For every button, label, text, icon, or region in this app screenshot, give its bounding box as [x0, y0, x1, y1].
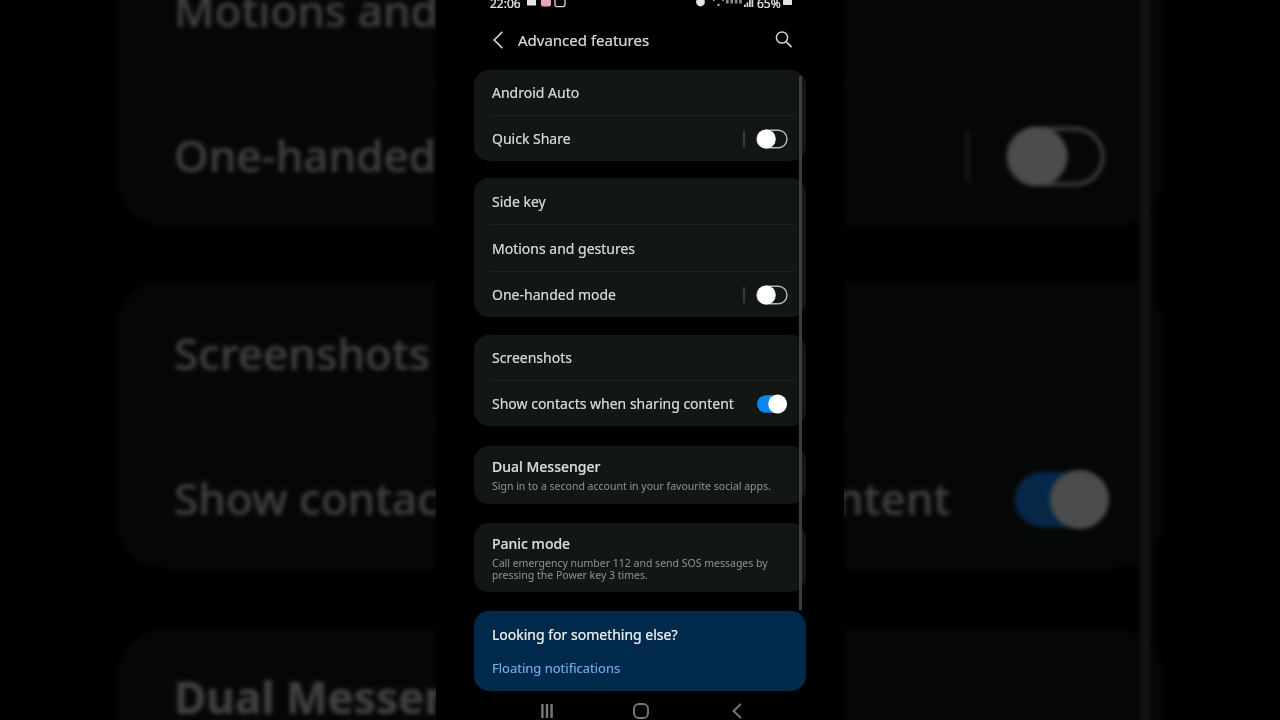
staticText: Show contacts when sharing content	[173, 467, 951, 527]
button[interactable]: Turn on	[735, 280, 787, 310]
staticText: Dual Messenger	[173, 665, 529, 720]
staticText: Motions and gestures	[175, 0, 635, 39]
button[interactable]: Android Auto	[474, 70, 806, 115]
staticText: Motions and gestures	[492, 239, 636, 258]
staticText: One-handed mode	[174, 123, 571, 183]
button[interactable]: Panic mode	[474, 523, 806, 592]
staticText: Show contacts when sharing content	[174, 467, 952, 527]
staticText: One-handed mode	[174, 125, 571, 185]
staticText: Motions and gestures	[174, 0, 634, 39]
button[interactable]: Turn on	[735, 124, 787, 154]
staticText: Dual Messenger	[174, 666, 530, 720]
staticText: Screenshots	[173, 322, 431, 382]
staticText: Show contacts when sharing content	[175, 467, 953, 527]
button[interactable]: Back	[713, 691, 759, 720]
staticText: Screenshots	[174, 322, 432, 382]
button[interactable]: Side key	[474, 178, 806, 224]
staticText: 22:06	[490, 0, 521, 9]
staticText: 65%	[757, 0, 781, 9]
staticText: One-handed mode	[492, 285, 616, 304]
staticText: Floating notifications	[492, 659, 621, 677]
staticText: Show contacts when sharing content	[492, 394, 734, 413]
button[interactable]: Screenshots	[474, 335, 806, 380]
button[interactable]: Turn off	[735, 389, 787, 419]
button[interactable]: Home	[618, 691, 664, 720]
staticText: Screenshots	[174, 321, 432, 381]
staticText: Quick Share	[492, 129, 571, 148]
staticText: Screenshots	[492, 348, 572, 367]
staticText: Show contacts when sharing content	[174, 468, 952, 528]
button[interactable]: Search	[764, 14, 844, 66]
staticText: Call emergency number 112 and send SOS m…	[492, 556, 768, 582]
staticText: Motions and gestures	[174, 0, 634, 40]
button[interactable]: Quick Share	[474, 116, 806, 161]
button[interactable]: Motions and gestures	[474, 225, 806, 271]
staticText: Android Auto	[492, 83, 580, 102]
button[interactable]: Navigate up	[436, 14, 518, 66]
staticText: Show contacts when sharing content	[174, 466, 952, 526]
staticText: Dual Messenger	[174, 664, 530, 720]
staticText: Dual Messenger	[492, 457, 601, 476]
staticText: Dual Messenger	[174, 665, 530, 720]
staticText: One-handed mode	[173, 124, 570, 184]
button[interactable]: Looking for something else?	[474, 611, 806, 691]
staticText: Sign in to a second account in your favo…	[492, 479, 771, 493]
button[interactable]: Show contacts when sharing content	[474, 381, 806, 426]
staticText: Side key	[492, 192, 546, 211]
staticText: One-handed mode	[174, 124, 571, 184]
staticText: Motions and gestures	[174, 0, 634, 38]
staticText: Panic mode	[492, 534, 571, 553]
staticText: Looking for something else?	[492, 625, 678, 644]
staticText: Advanced features	[518, 30, 650, 50]
button[interactable]: Dual Messenger	[474, 446, 806, 504]
staticText: One-handed mode	[175, 124, 572, 184]
staticText: Dual Messenger	[175, 665, 531, 720]
button[interactable]: Recents	[524, 691, 570, 720]
staticText: Screenshots	[175, 322, 433, 382]
staticText: Screenshots	[174, 323, 432, 383]
button[interactable]: One-handed mode	[474, 272, 806, 317]
staticText: Motions and gestures	[173, 0, 633, 39]
